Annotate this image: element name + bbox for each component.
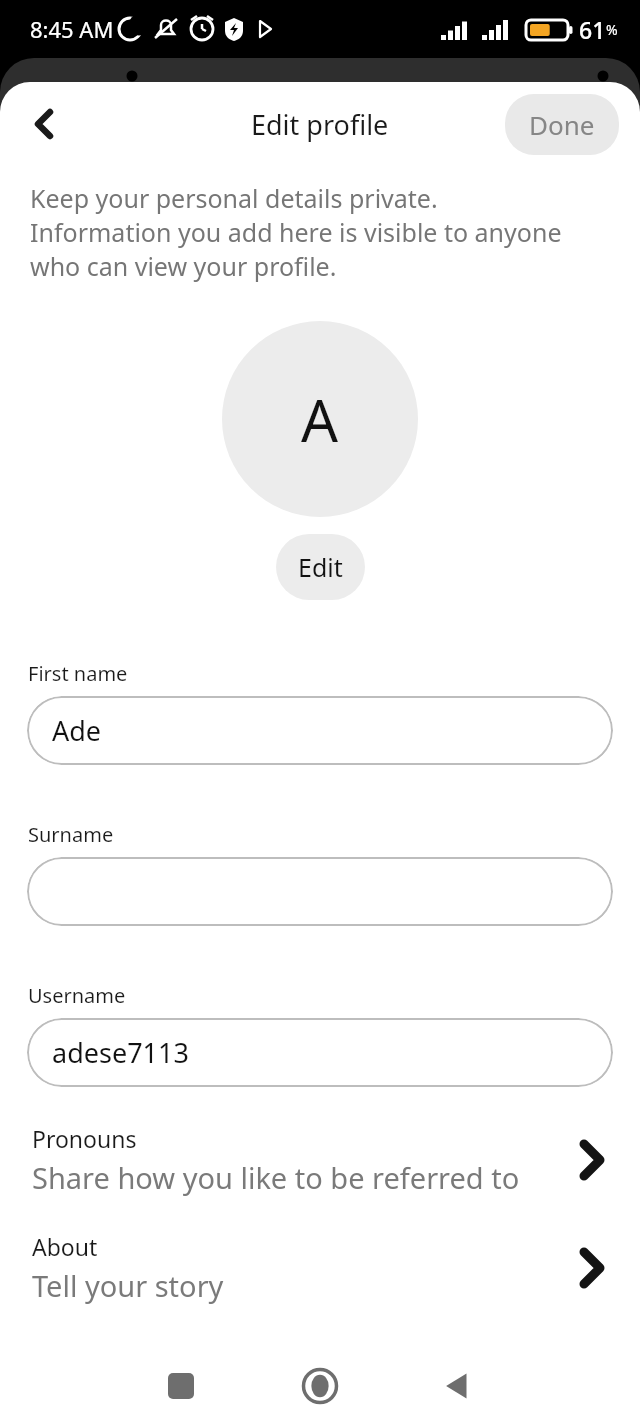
staticText: adese7113 [52, 1034, 189, 1071]
staticText: Share how you like to be referred to [32, 1158, 520, 1197]
staticText: Tell your story [32, 1266, 224, 1305]
staticText: Done [529, 107, 595, 142]
staticText: % [606, 20, 618, 39]
staticText: A [301, 380, 339, 459]
staticText: Ade [52, 712, 102, 749]
staticText: Surname [28, 821, 114, 848]
button[interactable]: Edit [276, 534, 365, 600]
button[interactable]: About [0, 1225, 640, 1311]
staticText: Edit profile [251, 106, 389, 143]
button[interactable]: adese7113 [27, 1018, 613, 1087]
staticText: First name [28, 660, 128, 687]
button[interactable]: Back [14, 94, 74, 154]
button[interactable]: Profile photo [222, 321, 418, 517]
staticText: About [32, 1231, 98, 1262]
staticText: Edit [298, 550, 343, 584]
button[interactable]: Back [426, 1355, 488, 1417]
button[interactable]: Pronouns [0, 1117, 640, 1203]
button[interactable]: Ade [27, 696, 613, 765]
button[interactable] [27, 857, 613, 926]
staticText: Pronouns [32, 1123, 137, 1154]
button[interactable]: Recent apps [150, 1355, 212, 1417]
button[interactable]: Home [289, 1355, 351, 1417]
staticText: 61 [579, 14, 606, 45]
staticText: Keep your personal details private. Info… [30, 181, 585, 283]
staticText: 8:45 AM [30, 14, 114, 44]
staticText: Username [28, 982, 126, 1009]
button[interactable]: Done [505, 94, 619, 155]
